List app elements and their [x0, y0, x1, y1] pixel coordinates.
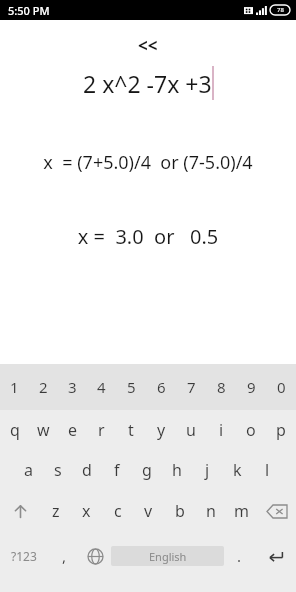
- staticText: l: [265, 459, 270, 481]
- button[interactable]: ?123: [0, 532, 48, 580]
- staticText: m: [234, 500, 249, 522]
- button[interactable]: 5: [116, 364, 146, 410]
- staticText: English: [149, 549, 187, 564]
- button[interactable]: 8: [206, 364, 236, 410]
- button[interactable]: c: [102, 490, 133, 532]
- button[interactable]: q: [0, 410, 29, 450]
- button[interactable]: i: [206, 410, 236, 450]
- staticText: v: [144, 500, 153, 522]
- staticText: g: [142, 459, 152, 481]
- button[interactable]: 3: [58, 364, 87, 410]
- button[interactable]: 7: [176, 364, 206, 410]
- staticText: 0: [277, 377, 286, 397]
- button[interactable]: y: [146, 410, 176, 450]
- staticText: 78: [277, 6, 284, 14]
- button[interactable]: l: [252, 450, 282, 490]
- staticText: x = (7+5.0)/4 or (7-5.0)/4: [4, 150, 292, 175]
- button[interactable]: s: [43, 450, 72, 490]
- staticText: 1: [10, 377, 19, 397]
- button[interactable]: b: [164, 490, 195, 532]
- staticText: q: [10, 419, 20, 441]
- button[interactable]: o: [236, 410, 266, 450]
- staticText: h: [172, 459, 182, 481]
- button[interactable]: f: [102, 450, 132, 490]
- button[interactable]: z: [40, 490, 71, 532]
- button[interactable]: Backspace: [257, 490, 296, 532]
- button[interactable]: g: [132, 450, 162, 490]
- button[interactable]: 1: [0, 364, 29, 410]
- staticText: x = 3.0 or 0.5: [0, 223, 296, 250]
- button[interactable]: d: [72, 450, 102, 490]
- button[interactable]: x: [71, 490, 102, 532]
- staticText: x: [82, 500, 91, 522]
- button[interactable]: n: [195, 490, 226, 532]
- staticText: 3: [68, 377, 77, 397]
- staticText: <<: [138, 34, 158, 57]
- staticText: 5:50 PM: [8, 3, 50, 18]
- staticText: f: [114, 459, 120, 481]
- staticText: w: [37, 419, 50, 441]
- staticText: 4: [97, 377, 106, 397]
- button[interactable]: 0: [266, 364, 296, 410]
- button[interactable]: Shift: [0, 490, 40, 532]
- staticText: r: [98, 419, 105, 441]
- staticText: c: [114, 500, 122, 522]
- staticText: y: [157, 419, 166, 441]
- staticText: j: [205, 459, 210, 481]
- button[interactable]: e: [58, 410, 87, 450]
- button[interactable]: 6: [146, 364, 176, 410]
- staticText: t: [128, 419, 134, 441]
- staticText: ,: [62, 546, 67, 566]
- staticText: 2: [39, 377, 48, 397]
- staticText: 2 x^2 -7x +3: [83, 68, 212, 99]
- staticText: .: [237, 546, 242, 566]
- staticText: z: [52, 500, 60, 522]
- staticText: o: [246, 419, 256, 441]
- button[interactable]: r: [87, 410, 116, 450]
- staticText: i: [219, 419, 224, 441]
- button[interactable]: w: [29, 410, 58, 450]
- staticText: 5: [127, 377, 136, 397]
- button[interactable]: .: [224, 532, 255, 580]
- button[interactable]: k: [222, 450, 252, 490]
- button[interactable]: h: [162, 450, 192, 490]
- staticText: n: [206, 500, 216, 522]
- staticText: ?123: [11, 548, 37, 564]
- staticText: d: [82, 459, 92, 481]
- staticText: a: [24, 459, 33, 481]
- button[interactable]: p: [266, 410, 296, 450]
- button[interactable]: ,: [48, 532, 80, 580]
- staticText: 9: [247, 377, 256, 397]
- button[interactable]: 9: [236, 364, 266, 410]
- button[interactable]: Enter: [255, 532, 296, 580]
- button[interactable]: 4: [87, 364, 116, 410]
- staticText: 6: [157, 377, 166, 397]
- button[interactable]: 2: [29, 364, 58, 410]
- button[interactable]: Change language: [80, 532, 111, 580]
- button[interactable]: u: [176, 410, 206, 450]
- staticText: 7: [187, 377, 196, 397]
- button[interactable]: v: [133, 490, 164, 532]
- staticText: b: [175, 500, 185, 522]
- button[interactable]: 2 x^2 -7x +3: [0, 66, 296, 100]
- button[interactable]: Back: [0, 32, 296, 58]
- staticText: k: [233, 459, 242, 481]
- button[interactable]: t: [116, 410, 146, 450]
- staticText: u: [186, 419, 196, 441]
- button[interactable]: a: [14, 450, 43, 490]
- staticText: 8: [217, 377, 226, 397]
- staticText: e: [68, 419, 78, 441]
- staticText: p: [276, 419, 286, 441]
- staticText: s: [54, 459, 62, 481]
- button[interactable]: m: [226, 490, 257, 532]
- button[interactable]: j: [192, 450, 222, 490]
- button[interactable]: English: [111, 532, 224, 580]
